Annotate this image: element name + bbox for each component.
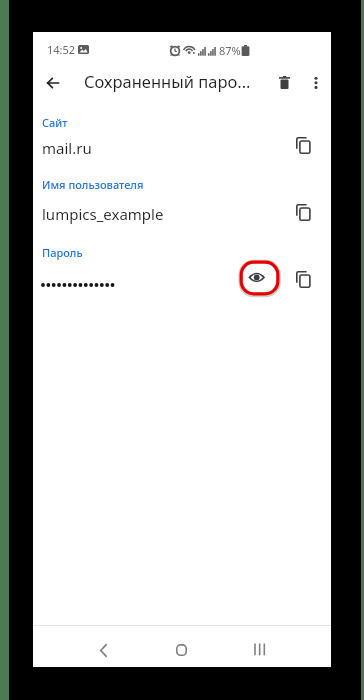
staticText: Сайт bbox=[42, 115, 68, 130]
button[interactable] bbox=[36, 66, 70, 100]
button[interactable] bbox=[302, 66, 330, 100]
button[interactable] bbox=[290, 133, 316, 158]
button[interactable] bbox=[290, 200, 316, 225]
staticText: Сохраненный паро... bbox=[84, 70, 251, 92]
staticText: Имя пользователя bbox=[42, 177, 144, 192]
button[interactable] bbox=[268, 66, 300, 100]
staticText: mail.ru bbox=[42, 138, 92, 158]
staticText: Пароль bbox=[42, 245, 83, 260]
staticText: lumpics_example bbox=[42, 204, 164, 224]
staticText: 87% bbox=[219, 43, 241, 58]
button[interactable] bbox=[85, 632, 121, 667]
button[interactable] bbox=[241, 632, 277, 667]
staticText: 14:52 bbox=[47, 42, 76, 57]
button[interactable] bbox=[290, 267, 316, 292]
button[interactable] bbox=[239, 260, 280, 296]
button[interactable] bbox=[163, 632, 199, 667]
